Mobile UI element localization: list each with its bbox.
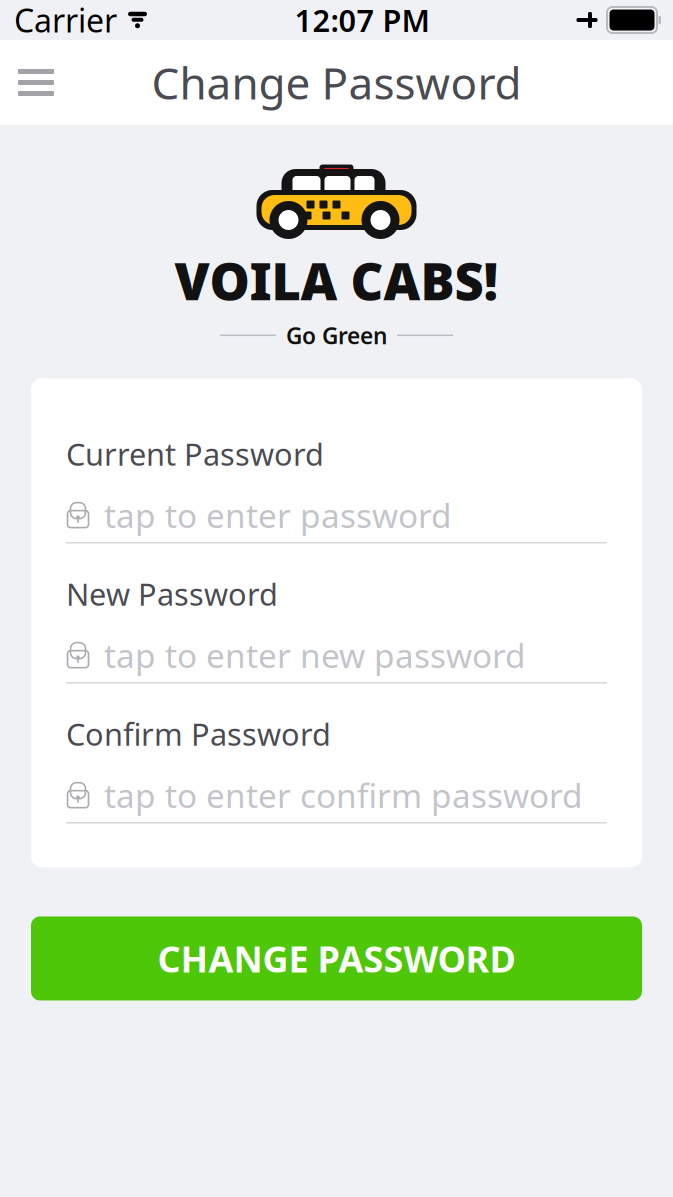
staticText: tap to enter confirm password — [104, 773, 583, 817]
staticText: tap to enter password — [104, 493, 452, 537]
staticText: Go Green — [286, 320, 387, 350]
staticText: tap to enter new password — [104, 633, 526, 677]
staticText: 12:07 PM — [294, 0, 429, 40]
staticText: Confirm Password — [66, 713, 331, 754]
staticText: Carrier — [14, 0, 117, 41]
button[interactable]: tap to enter password — [66, 488, 607, 543]
button[interactable]: tap to enter confirm password — [66, 768, 607, 823]
staticText: New Password — [66, 573, 278, 614]
button[interactable]: Menu — [6, 54, 66, 110]
staticText: Current Password — [66, 433, 324, 474]
staticText: VOILA CABS! — [174, 247, 498, 314]
staticText: Change Password — [151, 53, 521, 112]
staticText: CHANGE PASSWORD — [157, 935, 515, 982]
button[interactable]: CHANGE PASSWORD — [31, 916, 642, 1000]
button[interactable]: tap to enter new password — [66, 628, 607, 683]
